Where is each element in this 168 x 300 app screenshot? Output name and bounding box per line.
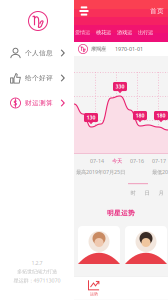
button[interactable]: 月 (154, 188, 168, 198)
staticText: 07-16 (130, 157, 144, 165)
staticText: 月 (158, 190, 163, 196)
button[interactable]: 首页 (150, 0, 168, 22)
button[interactable]: S (0, 93, 74, 113)
staticText: 星运群：497113070 (13, 277, 60, 284)
staticText: S (13, 99, 17, 107)
staticText: 明星运势 (107, 209, 135, 217)
staticText: 多拓世纪倾力打造 (17, 268, 57, 275)
button[interactable]: Menu (74, 0, 94, 22)
button[interactable]: 日 (140, 188, 154, 198)
staticText: 爱情运 (75, 29, 90, 36)
button[interactable]: 给个好评 (0, 68, 74, 88)
staticText: 出行运 (138, 29, 153, 36)
staticText: 最低20 (152, 168, 168, 176)
staticText: 财运测算 (25, 99, 53, 107)
staticText: 07-17 (152, 157, 166, 165)
staticText: 07-14 (90, 157, 104, 165)
button[interactable]: 个人信息 (0, 43, 74, 63)
button[interactable]: 运势 (74, 277, 114, 299)
staticText: 运势 (90, 292, 98, 296)
staticText: 130 (86, 114, 95, 121)
staticText: 180 (156, 112, 165, 119)
staticText: 个人信息 (25, 49, 53, 57)
staticText: 给个好评 (25, 74, 53, 82)
staticText: 180 (135, 112, 144, 119)
staticText: 桃花运 (96, 29, 111, 36)
staticText: 时 (130, 190, 135, 196)
staticText: 1970-01-01 (115, 45, 143, 53)
button[interactable]: 时 (126, 188, 140, 198)
staticText: 1.2.7 (31, 259, 42, 266)
staticText: 摩羯座 (91, 46, 106, 52)
staticText: 日 (144, 190, 149, 196)
button[interactable] (125, 226, 167, 264)
staticText: 330 (115, 83, 124, 90)
staticText: 最高2019年07月25日 (76, 168, 125, 176)
staticText: 今天 (112, 158, 122, 164)
staticText: 首页 (150, 7, 164, 15)
staticText: 游戏运 (117, 29, 132, 36)
button[interactable] (78, 226, 120, 264)
